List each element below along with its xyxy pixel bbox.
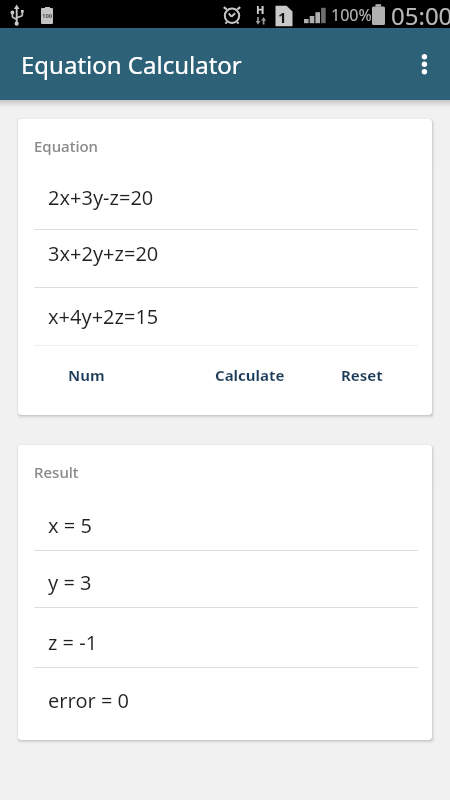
button[interactable]: Calculate (198, 357, 302, 393)
button[interactable]: Reset (320, 357, 404, 393)
button[interactable]: Num (48, 357, 124, 393)
staticText: 100% (331, 4, 372, 26)
staticText: 1 (278, 7, 287, 27)
staticText: y = 3 (48, 569, 92, 596)
staticText: 3x+2y+z=20 (48, 240, 159, 267)
staticText: 2x+3y-z=20 (48, 184, 154, 211)
staticText: H (256, 2, 265, 17)
staticText: Num (68, 365, 105, 385)
staticText: Equation (34, 136, 99, 156)
staticText: x+4y+2z=15 (48, 303, 159, 330)
staticText: Reset (341, 365, 383, 385)
staticText: Equation Calculator (21, 48, 242, 81)
staticText: error = 0 (48, 687, 130, 714)
staticText: x = 5 (48, 512, 92, 539)
button[interactable] (402, 40, 450, 88)
staticText: Result (34, 462, 79, 482)
staticText: z = -1 (48, 629, 98, 656)
staticText: Calculate (215, 365, 285, 385)
staticText: 05:00 (391, 0, 450, 27)
staticText: 100 (42, 12, 53, 20)
